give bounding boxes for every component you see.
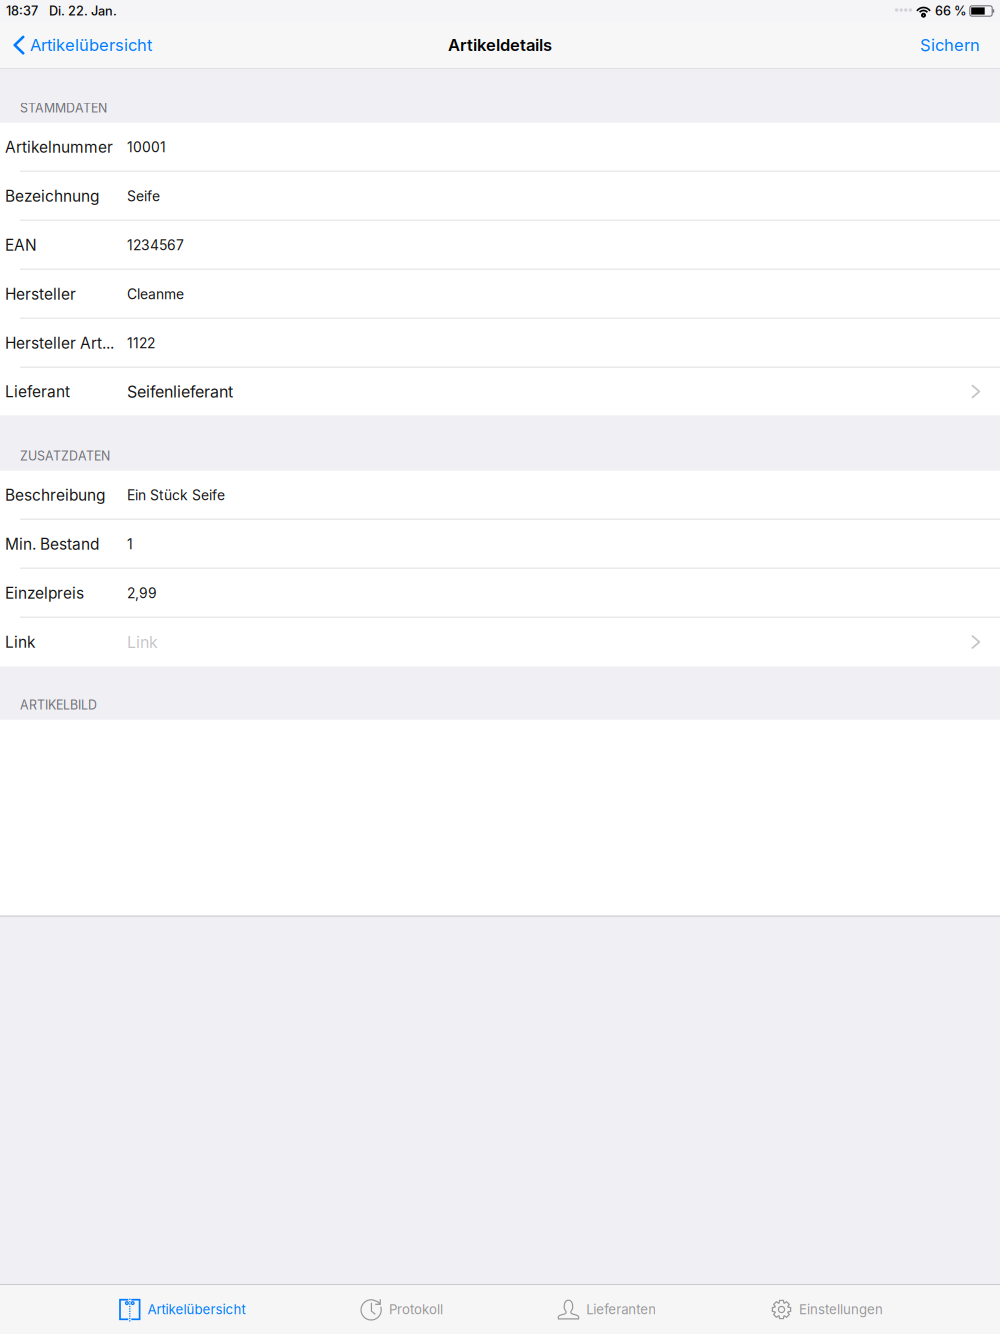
staticText: EAN xyxy=(5,236,37,254)
staticText: Hersteller Art... xyxy=(5,334,114,352)
staticText: 1122 xyxy=(127,335,155,351)
button[interactable]: Hersteller Art... xyxy=(0,319,1000,368)
staticText: Artikelübersicht xyxy=(30,35,152,55)
staticText: Protokoll xyxy=(389,1301,443,1317)
staticText: Di. 22. Jan. xyxy=(49,3,117,19)
staticText: Seife xyxy=(127,188,160,204)
staticText: Sichern xyxy=(920,35,980,55)
staticText: Cleanme xyxy=(127,286,184,302)
staticText: ARTIKELBILD xyxy=(20,698,97,713)
staticText: 1234567 xyxy=(127,237,184,253)
button[interactable]: Sichern xyxy=(920,22,1000,68)
staticText: Artikelnummer xyxy=(5,138,113,156)
staticText: Artikelübersicht xyxy=(148,1301,246,1317)
button[interactable]: Einzelpreis xyxy=(0,569,1000,618)
staticText: Bezeichnung xyxy=(5,187,99,205)
button[interactable]: Link xyxy=(0,618,1000,667)
staticText: Lieferant xyxy=(5,382,70,401)
staticText: Min. Bestand xyxy=(5,535,99,553)
staticText: Seifenlieferant xyxy=(127,382,233,401)
staticText: 2,99 xyxy=(127,585,157,601)
button[interactable]: Beschreibung xyxy=(0,471,1000,520)
staticText: Artikeldetails xyxy=(448,35,552,55)
staticText: Hersteller xyxy=(5,285,76,303)
button[interactable]: Protokoll xyxy=(360,1285,443,1334)
staticText: Ein Stück Seife xyxy=(127,487,225,503)
button[interactable]: Min. Bestand xyxy=(0,520,1000,569)
staticText: Link xyxy=(5,633,35,651)
staticText: Einzelpreis xyxy=(5,584,84,602)
staticText: STAMMDATEN xyxy=(20,101,107,116)
button[interactable]: Artikelübersicht xyxy=(0,22,152,68)
staticText: Link xyxy=(127,632,158,652)
staticText: 18:37 xyxy=(6,3,38,19)
button[interactable]: Artikelnummer xyxy=(0,123,1000,172)
button[interactable]: EAN xyxy=(0,221,1000,270)
button[interactable]: Bezeichnung xyxy=(0,172,1000,221)
button[interactable]: Hersteller xyxy=(0,270,1000,319)
button[interactable]: Artikelübersicht xyxy=(119,1285,246,1334)
staticText: Beschreibung xyxy=(5,486,105,504)
staticText: 66 % xyxy=(935,3,967,19)
staticText: 1 xyxy=(127,536,133,552)
button[interactable]: Lieferanten xyxy=(558,1285,656,1334)
staticText: Lieferanten xyxy=(586,1301,656,1317)
staticText: Einstellungen xyxy=(799,1301,883,1317)
button[interactable]: Lieferant xyxy=(0,368,1000,416)
staticText: ZUSATZDATEN xyxy=(20,449,110,464)
button[interactable]: Einstellungen xyxy=(771,1285,883,1334)
staticText: 10001 xyxy=(127,139,166,155)
